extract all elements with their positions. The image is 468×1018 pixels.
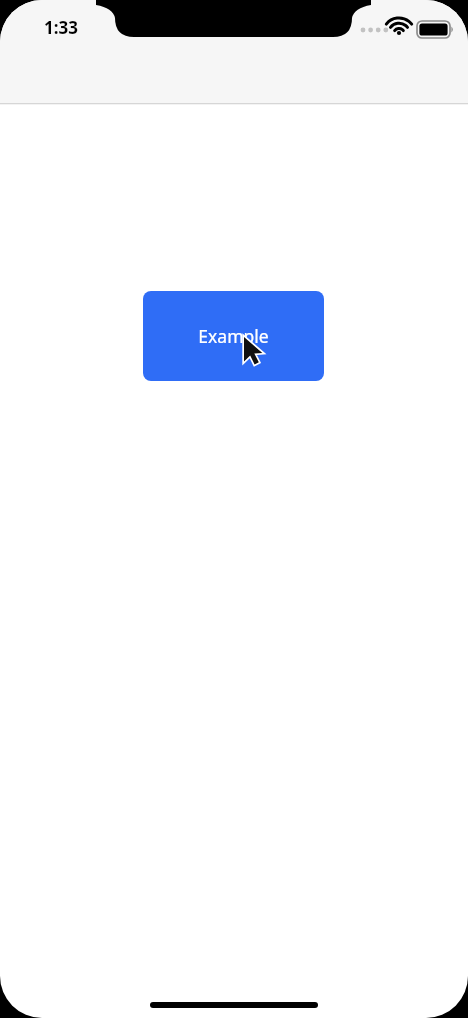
staticText: Example: [198, 324, 269, 348]
staticText: 1:33: [44, 16, 78, 39]
other: Home indicator: [150, 1002, 318, 1008]
button[interactable]: Example: [143, 291, 324, 381]
